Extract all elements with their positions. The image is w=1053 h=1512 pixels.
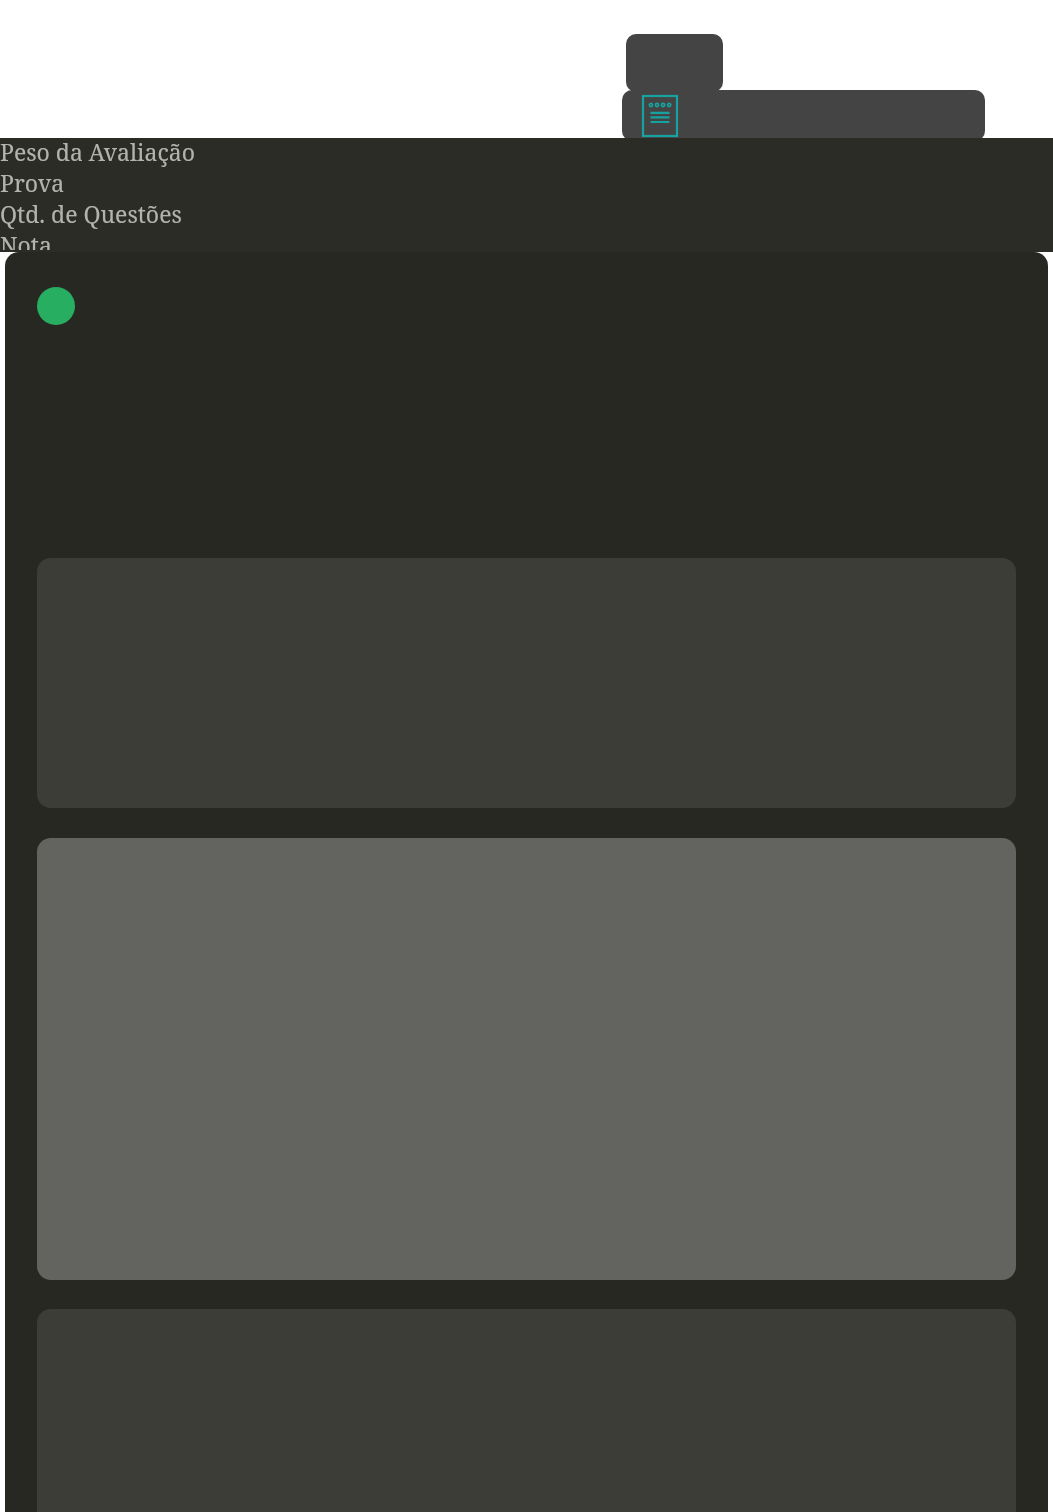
staticText: Qtd. de Questões xyxy=(0,198,182,229)
staticText: Peso da Avaliação xyxy=(0,136,195,167)
button[interactable]: Document list xyxy=(622,90,985,141)
staticText: Nota xyxy=(0,229,52,250)
button[interactable]: Menu tab xyxy=(626,34,723,92)
button[interactable]: Status ativo xyxy=(5,287,1048,558)
button[interactable]: Document list xyxy=(642,95,678,137)
other: Status ativo xyxy=(37,287,75,325)
staticText: Prova xyxy=(0,167,65,198)
